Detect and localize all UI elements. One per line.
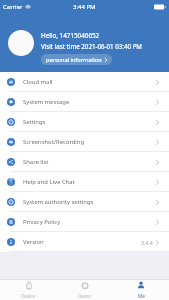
button[interactable]: personal information <box>46 54 109 65</box>
staticText: System authority settings <box>23 198 94 206</box>
staticText: Settings <box>23 118 46 126</box>
staticText: Device <box>21 293 36 299</box>
button[interactable]: Help and Live Chat <box>0 172 169 192</box>
staticText: Visit last time 2021-06-01 03:40 PM <box>41 42 142 50</box>
staticText: Hello, 14715046652 <box>41 31 100 40</box>
button[interactable]: Me <box>113 280 169 300</box>
button[interactable]: Demo <box>57 280 113 300</box>
staticText: Help and Live Chat <box>23 178 75 186</box>
staticText: System message <box>23 98 70 106</box>
button[interactable]: Settings <box>0 112 169 132</box>
staticText: Carrier <box>3 3 23 11</box>
button[interactable]: Screenshot/Recording <box>0 132 169 152</box>
button[interactable]: Cloud mall <box>0 72 169 92</box>
staticText: Privacy Policy <box>23 218 61 226</box>
staticText: 3.4.4 <box>141 239 153 246</box>
staticText: personal information <box>46 56 102 64</box>
button[interactable]: Device <box>0 280 57 300</box>
button[interactable]: Privacy Policy <box>0 212 169 232</box>
staticText: Share list <box>23 158 49 166</box>
staticText: Version <box>23 238 44 246</box>
button[interactable]: System message <box>0 92 169 112</box>
button[interactable]: Share list <box>0 152 169 172</box>
staticText: 3:44 PM <box>73 3 96 11</box>
staticText: Screenshot/Recording <box>23 138 85 146</box>
staticText: Me <box>138 293 145 299</box>
staticText: Cloud mall <box>23 78 53 86</box>
button[interactable]: Version <box>0 232 169 252</box>
button[interactable]: System authority settings <box>0 192 169 212</box>
staticText: Demo <box>78 293 92 299</box>
